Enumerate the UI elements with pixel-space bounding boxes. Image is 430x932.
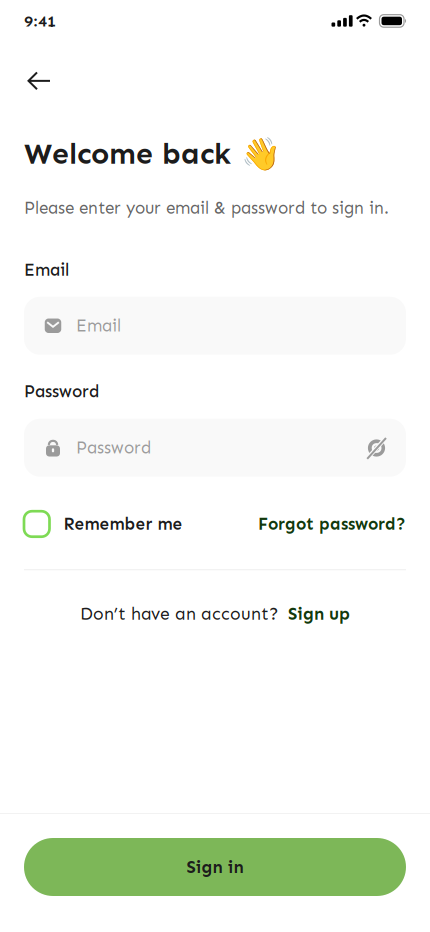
button[interactable]: Email (24, 297, 406, 355)
staticText: Forgot password? (258, 514, 406, 534)
staticText: Email (24, 260, 69, 280)
staticText: Don’t have an account? (80, 603, 279, 624)
staticText: Sign in (186, 856, 243, 878)
button[interactable] (0, 69, 51, 92)
staticText: Password (24, 381, 99, 402)
staticText: 👋 (241, 135, 281, 172)
staticText: Sign up (288, 603, 350, 624)
button[interactable]: Remember me (24, 511, 182, 537)
button[interactable]: Password (24, 419, 406, 477)
button[interactable]: Sign up (288, 603, 350, 624)
staticText: Email (76, 315, 121, 336)
staticText: Remember me (63, 514, 182, 534)
staticText: 9:41 (24, 11, 56, 31)
staticText: Welcome back (24, 136, 231, 172)
staticText: Please enter your email & password to si… (24, 198, 389, 218)
staticText: Password (76, 437, 151, 458)
button[interactable]: Sign in (24, 838, 406, 896)
button[interactable]: Forgot password? (258, 514, 406, 534)
